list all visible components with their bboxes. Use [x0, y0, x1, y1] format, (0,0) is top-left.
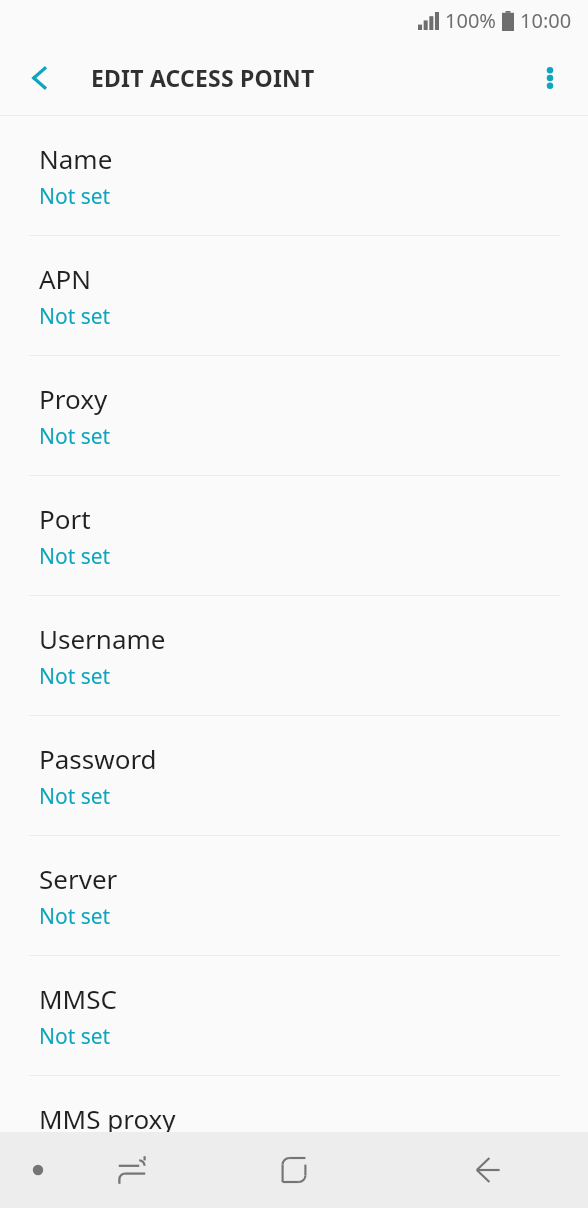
- staticText: 10:00: [520, 7, 572, 34]
- button[interactable]: Port: [0, 476, 588, 595]
- button[interactable]: Username: [0, 596, 588, 715]
- button[interactable]: MMS proxy: [0, 1076, 588, 1195]
- staticText: Password: [39, 741, 157, 776]
- staticText: EDIT ACCESS POINT: [91, 62, 315, 93]
- button[interactable]: Server: [0, 836, 588, 955]
- button[interactable]: Home: [267, 1143, 321, 1197]
- button[interactable]: Recent apps: [105, 1143, 159, 1197]
- staticText: Server: [39, 861, 118, 896]
- staticText: APN: [39, 261, 92, 296]
- button[interactable]: Back: [460, 1143, 514, 1197]
- button[interactable]: Password: [0, 716, 588, 835]
- staticText: Not set: [39, 662, 111, 691]
- staticText: Not set: [39, 782, 111, 811]
- staticText: MMSC: [39, 981, 117, 1016]
- button[interactable]: Proxy: [0, 356, 588, 475]
- staticText: Username: [39, 621, 166, 656]
- staticText: Not set: [39, 302, 111, 331]
- staticText: Not set: [39, 1022, 111, 1051]
- button[interactable]: APN: [0, 236, 588, 355]
- staticText: Name: [39, 141, 113, 176]
- staticText: Not set: [39, 422, 111, 451]
- staticText: Not set: [39, 182, 111, 211]
- staticText: Not set: [39, 542, 111, 571]
- staticText: MMS proxy: [39, 1101, 176, 1136]
- button[interactable]: More options: [524, 52, 576, 104]
- button[interactable]: Name: [0, 116, 588, 235]
- staticText: Not set: [39, 902, 111, 931]
- staticText: Proxy: [39, 381, 108, 416]
- button[interactable]: Navigate up: [14, 52, 66, 104]
- button[interactable]: MMSC: [0, 956, 588, 1075]
- staticText: 100%: [445, 7, 496, 34]
- button[interactable]: Show keyboard: [14, 1146, 62, 1194]
- staticText: Not set: [39, 1142, 111, 1171]
- staticText: Port: [39, 501, 91, 536]
